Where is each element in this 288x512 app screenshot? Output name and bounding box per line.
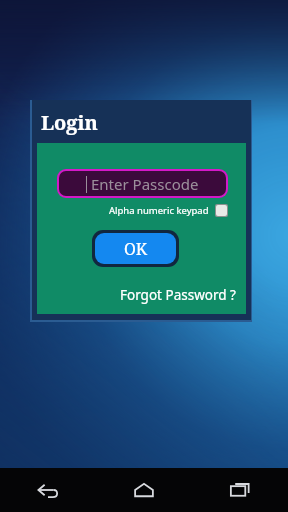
- staticText: Login: [41, 109, 98, 136]
- staticText: Forgot Password ?: [120, 286, 236, 304]
- button[interactable]: OK: [95, 233, 176, 264]
- button[interactable]: Recent apps: [192, 468, 288, 512]
- button[interactable]: Forgot Password ?: [118, 284, 238, 306]
- button[interactable]: Back: [0, 468, 96, 512]
- staticText: OK: [124, 238, 148, 260]
- staticText: Alpha numeric keypad: [109, 204, 209, 217]
- button[interactable]: Alpha numeric keypad: [109, 204, 228, 217]
- button[interactable]: Enter Passcode: [59, 171, 226, 196]
- button[interactable]: Home: [96, 468, 192, 512]
- staticText: Enter Passcode: [91, 174, 199, 194]
